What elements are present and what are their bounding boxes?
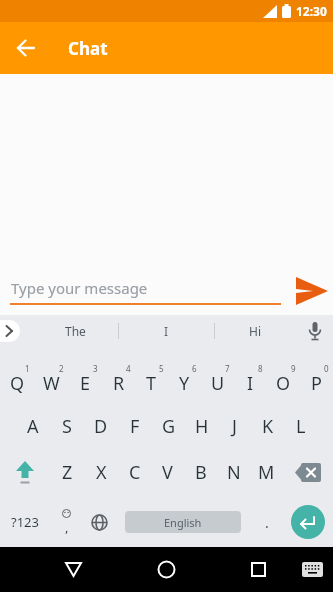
staticText: 0	[324, 363, 329, 374]
button[interactable]: X	[84, 447, 118, 497]
button[interactable]	[149, 547, 183, 592]
button[interactable]: The	[50, 315, 100, 347]
staticText: English	[164, 515, 202, 530]
staticText: M	[258, 460, 275, 485]
staticText: N	[227, 460, 241, 485]
button[interactable]: U	[201, 347, 234, 397]
button[interactable]: T	[135, 347, 168, 397]
button[interactable]: N	[217, 447, 250, 497]
button[interactable]	[0, 447, 50, 497]
staticText: 4	[126, 363, 131, 374]
button[interactable]: B	[184, 447, 217, 497]
button[interactable]: S	[50, 397, 84, 447]
button[interactable]	[0, 320, 20, 342]
staticText: J	[232, 414, 237, 439]
staticText: 6	[192, 363, 197, 374]
button[interactable]: Q	[0, 347, 34, 397]
staticText: L	[296, 414, 306, 439]
button[interactable]: P	[300, 347, 333, 397]
button[interactable]	[56, 547, 90, 592]
staticText: ,	[65, 518, 69, 536]
button[interactable]: F	[118, 397, 152, 447]
staticText: T	[146, 371, 157, 396]
staticText: Z	[62, 460, 73, 485]
button[interactable]: A	[16, 397, 50, 447]
button[interactable]: English	[116, 497, 250, 547]
button[interactable]: D	[84, 397, 118, 447]
button[interactable]	[241, 547, 275, 592]
button[interactable]: W	[34, 347, 68, 397]
button[interactable]	[283, 447, 333, 497]
button[interactable]	[283, 497, 333, 547]
staticText: B	[195, 460, 207, 485]
button[interactable]	[296, 277, 328, 305]
button[interactable]: ?123	[0, 497, 50, 547]
staticText: F	[130, 414, 140, 439]
staticText: .	[265, 513, 269, 532]
staticText: 7	[225, 363, 230, 374]
staticText: The	[65, 323, 86, 339]
staticText: 2	[59, 363, 64, 374]
staticText: Y	[179, 371, 190, 396]
staticText: 3	[93, 363, 98, 374]
staticText: 12:30	[296, 3, 327, 19]
button[interactable]	[0, 22, 52, 74]
button[interactable]: J	[218, 397, 251, 447]
button[interactable]: Z	[50, 447, 84, 497]
staticText: D	[94, 414, 108, 439]
button[interactable]: G	[152, 397, 185, 447]
button[interactable]: R	[102, 347, 135, 397]
staticText: A	[27, 414, 39, 439]
button[interactable]: V	[151, 447, 184, 497]
button[interactable]: L	[284, 397, 317, 447]
staticText: U	[211, 371, 225, 396]
staticText: E	[80, 371, 91, 396]
staticText: Type your message	[11, 278, 148, 298]
button[interactable]: C	[118, 447, 151, 497]
button[interactable]: Y	[168, 347, 201, 397]
staticText: Chat	[68, 37, 108, 60]
staticText: H	[195, 414, 209, 439]
staticText: Q	[10, 371, 25, 396]
button[interactable]: E	[68, 347, 102, 397]
staticText: I	[247, 371, 254, 396]
button[interactable]	[305, 321, 325, 341]
button[interactable]	[299, 547, 325, 592]
staticText: P	[311, 371, 322, 396]
button[interactable]: Hi	[230, 315, 280, 347]
button[interactable]: I	[141, 315, 191, 347]
staticText: 1	[25, 363, 30, 374]
button[interactable]: ,	[50, 497, 83, 547]
button[interactable]: K	[251, 397, 284, 447]
button[interactable]: H	[185, 397, 218, 447]
staticText: Hi	[249, 323, 261, 339]
staticText: O	[276, 371, 291, 396]
staticText: 5	[159, 363, 164, 374]
button[interactable]: .	[250, 497, 283, 547]
button[interactable]: M	[250, 447, 283, 497]
staticText: R	[113, 371, 125, 396]
button[interactable]	[83, 497, 116, 547]
staticText: ?123	[11, 513, 39, 531]
staticText: I	[164, 323, 169, 339]
staticText: X	[96, 460, 107, 485]
staticText: V	[162, 460, 173, 485]
staticText: K	[262, 414, 274, 439]
staticText: S	[62, 414, 72, 439]
staticText: W	[43, 371, 60, 396]
staticText: G	[162, 414, 176, 439]
staticText: 9	[291, 363, 296, 374]
button[interactable]: I	[234, 347, 267, 397]
staticText: C	[129, 460, 141, 485]
staticText: 8	[258, 363, 263, 374]
button[interactable]: O	[267, 347, 300, 397]
